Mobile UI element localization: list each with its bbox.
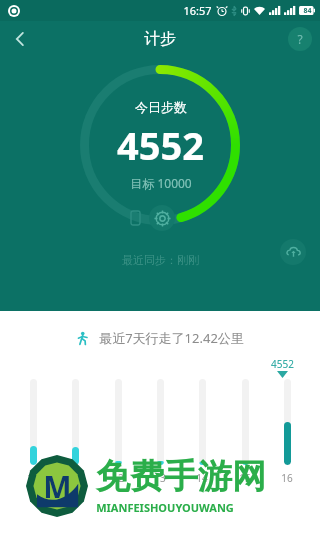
button[interactable]	[30, 379, 37, 465]
staticText: 4552	[271, 357, 294, 371]
staticText: 今日步数	[135, 99, 187, 115]
staticText: M	[43, 466, 72, 507]
staticText: 免费手游网	[96, 455, 266, 498]
button[interactable]	[72, 379, 79, 465]
staticText: ?	[297, 31, 303, 47]
staticText: 16	[281, 471, 293, 485]
staticText: 计步	[144, 29, 176, 49]
staticText: 16:57	[183, 3, 212, 18]
button[interactable]	[284, 379, 291, 465]
staticText: 11	[69, 471, 81, 485]
staticText: 14	[196, 471, 208, 485]
button[interactable]: Sync to cloud	[280, 239, 306, 265]
button[interactable]	[242, 379, 249, 465]
staticText: 13	[154, 471, 166, 485]
staticText: 最近7天行走了12.42公里	[99, 329, 244, 347]
button[interactable]: Help	[288, 27, 312, 51]
staticText: 10	[27, 471, 39, 485]
staticText: 4552	[117, 119, 204, 171]
staticText: 12	[112, 471, 124, 485]
button[interactable]: Settings	[149, 205, 175, 231]
staticText: 84	[303, 6, 312, 15]
staticText: MIANFEISHOUYOUWANG	[96, 500, 234, 515]
button[interactable]	[115, 379, 122, 465]
staticText: 15	[239, 471, 251, 485]
button[interactable]	[157, 379, 164, 465]
staticText: 目标 10000	[130, 175, 192, 191]
button[interactable]: Back	[0, 21, 40, 57]
button[interactable]	[199, 379, 206, 465]
staticText: 最近同步：刚刚	[122, 253, 199, 267]
